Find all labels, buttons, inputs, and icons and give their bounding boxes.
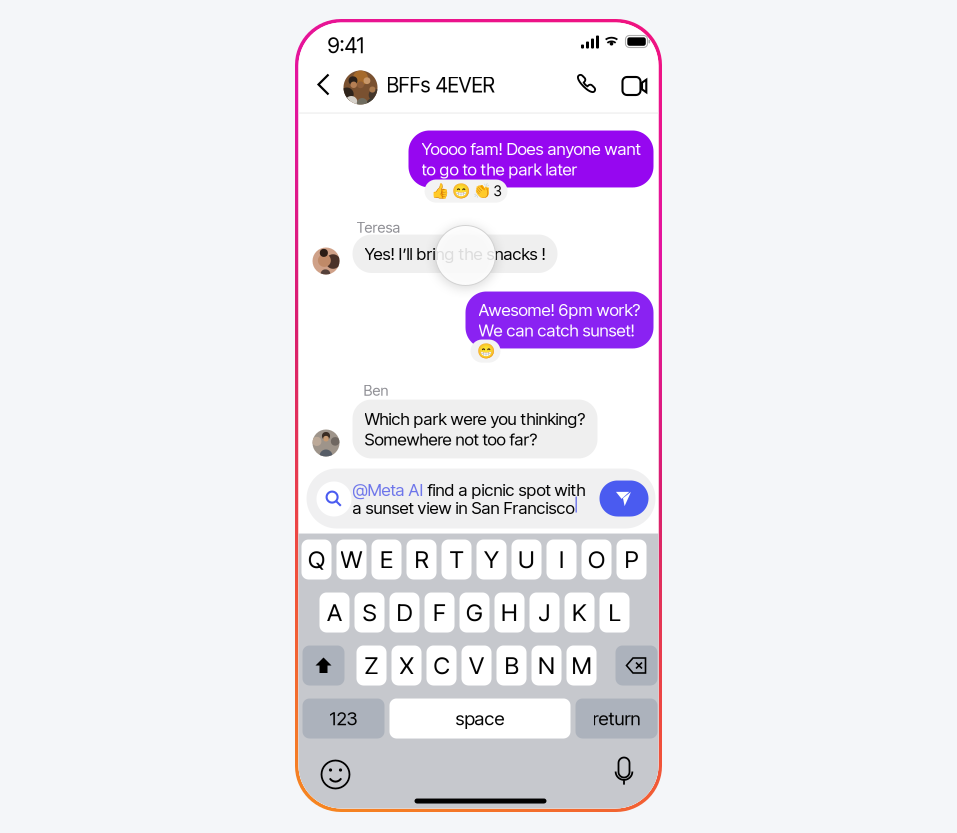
button[interactable]: Dictate	[613, 756, 635, 790]
staticText: 😁	[476, 342, 494, 360]
button[interactable]: Video call	[615, 69, 654, 102]
button[interactable]: Call	[568, 65, 604, 103]
button[interactable]: A	[319, 592, 349, 632]
button[interactable]: C	[426, 645, 456, 685]
button[interactable]: H	[494, 592, 524, 632]
staticText: R	[414, 545, 428, 574]
button[interactable]: Q	[301, 539, 331, 579]
button[interactable]: J	[529, 592, 559, 632]
staticText: L	[608, 598, 620, 627]
staticText: @Meta AI	[352, 479, 423, 500]
staticText: J	[538, 598, 550, 627]
staticText: Z	[364, 651, 378, 680]
staticText: F	[433, 598, 446, 627]
button[interactable]: W	[336, 539, 366, 579]
button[interactable]: Y	[476, 539, 506, 579]
button[interactable]: E	[371, 539, 401, 579]
staticText: W	[340, 545, 362, 574]
staticText: Teresa	[356, 218, 400, 236]
staticText: B	[504, 651, 518, 680]
button[interactable]: I	[546, 539, 576, 579]
staticText: E	[380, 545, 393, 574]
staticText: M	[571, 651, 591, 680]
button[interactable]: N	[531, 645, 561, 685]
staticText: Which park were you thinking? Somewhere …	[364, 408, 585, 449]
staticText: return	[592, 707, 640, 730]
staticText: Y	[484, 545, 499, 574]
button[interactable]: P	[616, 539, 646, 579]
button[interactable]: 123	[302, 698, 384, 738]
button[interactable]: U	[511, 539, 541, 579]
button[interactable]: Send	[599, 480, 648, 516]
button[interactable]: G	[459, 592, 489, 632]
button[interactable]: R	[406, 539, 436, 579]
staticText: 3	[493, 183, 501, 199]
staticText: C	[433, 651, 449, 680]
button[interactable]: M	[566, 645, 596, 685]
staticText: H	[501, 598, 518, 627]
button[interactable]: Z	[356, 645, 386, 685]
staticText: Awesome! 6pm work? We can catch sunset!	[478, 299, 640, 340]
button[interactable]: L	[599, 592, 629, 632]
staticText: K	[572, 598, 587, 627]
staticText: N	[538, 651, 555, 680]
staticText: 😁	[451, 182, 469, 200]
button[interactable]: V	[461, 645, 491, 685]
staticText: 123	[329, 707, 357, 730]
button[interactable]: O	[581, 539, 611, 579]
button[interactable]: Shift	[302, 645, 344, 685]
button[interactable]: Back	[308, 64, 340, 106]
button[interactable]: S	[354, 592, 384, 632]
staticText: Q	[308, 545, 325, 574]
staticText: Yes! I’ll bring the snacks !	[364, 243, 545, 264]
staticText: A	[327, 598, 342, 627]
staticText: I	[559, 545, 564, 574]
staticText: X	[399, 651, 413, 680]
staticText: Ben	[363, 381, 388, 399]
staticText: O	[588, 545, 605, 574]
staticText: 9:41	[327, 32, 364, 58]
button[interactable]: B	[496, 645, 526, 685]
staticText: space	[455, 707, 504, 730]
staticText: a sunset view in San Francisco	[352, 497, 574, 518]
button[interactable]: space	[389, 698, 570, 738]
staticText: U	[518, 545, 535, 574]
staticText: G	[466, 598, 483, 627]
button[interactable]: Delete	[615, 645, 657, 685]
button[interactable]: D	[389, 592, 419, 632]
button[interactable]: Search	[316, 481, 351, 516]
button[interactable]: T	[441, 539, 471, 579]
staticText: 👍	[430, 182, 448, 200]
staticText: V	[469, 651, 484, 680]
staticText: T	[449, 545, 463, 574]
button[interactable]: K	[564, 592, 594, 632]
staticText: find a picnic spot with	[423, 479, 585, 500]
staticText: P	[624, 545, 638, 574]
staticText: 👏	[472, 182, 490, 200]
staticText: S	[362, 598, 376, 627]
staticText: BFFs 4EVER	[386, 72, 494, 97]
staticText: D	[396, 598, 412, 627]
button[interactable]: Emoji	[321, 760, 349, 788]
button[interactable]: F	[424, 592, 454, 632]
staticText: Yoooo fam! Does anyone want to go to the…	[421, 138, 640, 179]
button[interactable]: X	[391, 645, 421, 685]
button[interactable]: return	[575, 698, 657, 738]
